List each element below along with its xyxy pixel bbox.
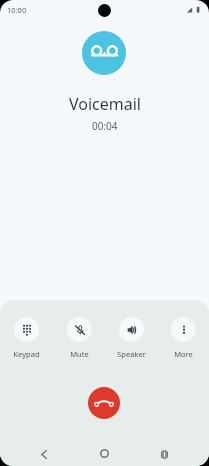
staticText: Voicemail bbox=[69, 93, 141, 115]
staticText: Keypad bbox=[13, 349, 40, 359]
button[interactable]: Home bbox=[92, 441, 116, 465]
button[interactable]: Speaker bbox=[105, 317, 157, 359]
button[interactable]: Back bbox=[32, 441, 56, 465]
staticText: More bbox=[174, 349, 193, 359]
button[interactable]: More bbox=[157, 317, 209, 359]
button[interactable]: Recent apps bbox=[152, 441, 176, 465]
button[interactable]: End call bbox=[88, 387, 120, 419]
button[interactable]: Keypad bbox=[0, 317, 53, 359]
staticText: 00:04 bbox=[92, 119, 118, 133]
staticText: 10:00 bbox=[7, 5, 27, 15]
staticText: Speaker bbox=[117, 349, 146, 359]
button[interactable]: Mute bbox=[53, 317, 105, 359]
staticText: Mute bbox=[70, 349, 89, 359]
